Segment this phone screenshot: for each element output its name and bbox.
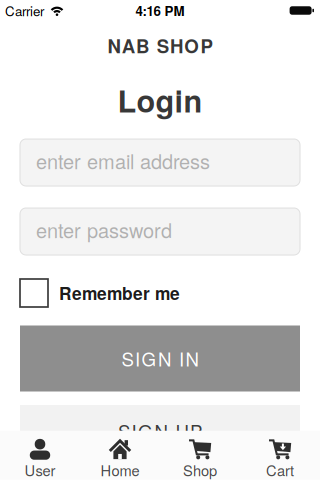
staticText: enter password bbox=[36, 215, 172, 243]
button[interactable]: Shop bbox=[160, 438, 240, 480]
button[interactable]: SIGN UP bbox=[20, 405, 300, 457]
button[interactable]: enter password bbox=[20, 208, 300, 255]
staticText: Remember me bbox=[59, 281, 180, 305]
staticText: NAB SHOP bbox=[107, 32, 213, 59]
button[interactable] bbox=[20, 279, 48, 307]
staticText: Cart bbox=[266, 460, 294, 480]
staticText: SIGN IN bbox=[121, 345, 198, 372]
button[interactable]: SIGN IN bbox=[20, 325, 300, 391]
button[interactable]: Home bbox=[80, 438, 160, 480]
button[interactable]: User bbox=[0, 438, 80, 480]
staticText: Shop bbox=[183, 460, 217, 480]
staticText: SIGN UP bbox=[118, 418, 202, 444]
staticText: Login bbox=[117, 79, 202, 121]
staticText: Carrier bbox=[5, 1, 44, 20]
staticText: 4:16 PM bbox=[135, 1, 184, 20]
staticText: enter email address bbox=[36, 146, 210, 174]
staticText: User bbox=[24, 460, 55, 480]
button[interactable]: enter email address bbox=[20, 139, 300, 186]
staticText: Home bbox=[100, 460, 139, 480]
button[interactable]: Cart bbox=[240, 438, 320, 480]
